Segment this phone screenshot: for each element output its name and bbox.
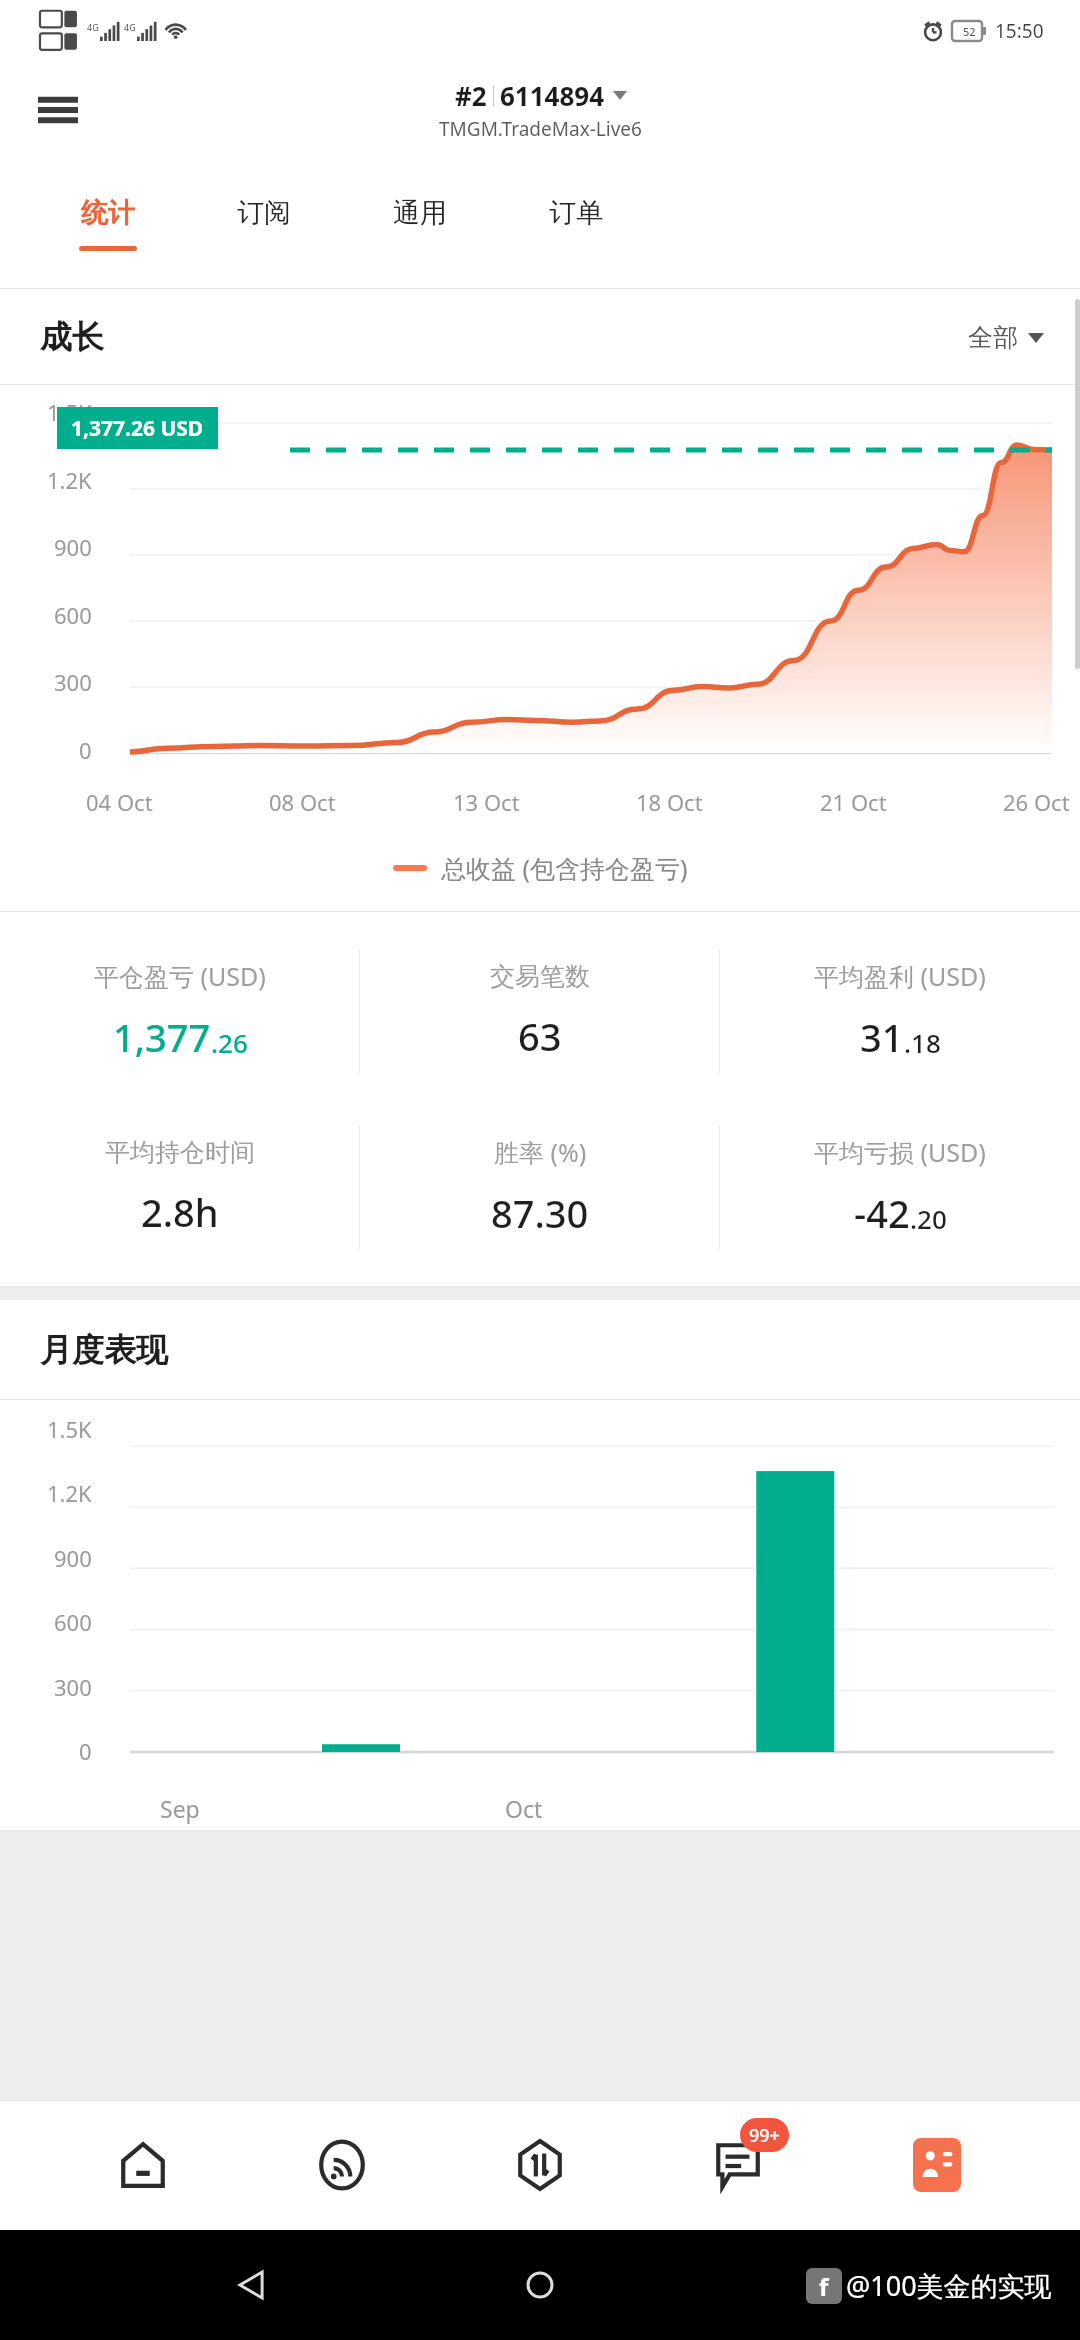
button[interactable]: Messages (683, 2110, 793, 2220)
staticText: 4G (124, 21, 136, 33)
staticText: Oct (505, 1793, 543, 1824)
staticText: 26 Oct (1003, 787, 1070, 817)
staticText: 52 (963, 24, 976, 39)
staticText: #2 (455, 78, 487, 113)
staticText: .26 (211, 1025, 248, 1060)
button[interactable]: Home (88, 2110, 198, 2220)
staticText: 18 Oct (636, 787, 703, 817)
button[interactable]: Menu (26, 78, 90, 142)
staticText: 总收益 (包含持仓盈亏) (441, 851, 688, 885)
staticText: 平仓盈亏 (USD) (94, 959, 266, 993)
staticText: 月度表现 (40, 1330, 168, 1370)
staticText: 600 (54, 1607, 92, 1637)
staticText: 0 (79, 1736, 92, 1766)
staticText: 600 (54, 600, 92, 630)
button[interactable]: 订单 (498, 157, 654, 289)
staticText: 1.5K (47, 1414, 92, 1444)
staticText: 31 (860, 1011, 904, 1063)
staticText: 订单 (549, 196, 603, 230)
staticText: -42 (854, 1187, 910, 1239)
staticText: .18 (904, 1025, 941, 1060)
staticText: 63 (518, 1010, 562, 1062)
staticText: 1,377 (113, 1011, 211, 1063)
staticText: 4G (87, 21, 99, 33)
staticText: TMGM.TradeMax-Live6 (439, 116, 642, 142)
button[interactable]: 统计 (30, 157, 186, 289)
staticText: 统计 (81, 196, 135, 230)
staticText: 成长 (40, 317, 104, 357)
button[interactable]: 通用 (342, 157, 498, 289)
button[interactable]: Signals (287, 2110, 397, 2220)
staticText: 99+ (749, 2123, 780, 2148)
staticText: 1.2K (47, 465, 92, 495)
staticText: .20 (910, 1201, 947, 1236)
staticText: 1.5K (47, 397, 92, 427)
staticText: 04 Oct (86, 787, 153, 817)
staticText: 平均亏损 (USD) (814, 1135, 986, 1169)
staticText: 900 (54, 532, 92, 562)
staticText: Sep (160, 1793, 200, 1824)
staticText: 87.30 (491, 1187, 589, 1239)
staticText: 0 (79, 735, 92, 765)
staticText: 通用 (393, 196, 447, 230)
button[interactable]: Back (218, 2250, 288, 2320)
staticText: 900 (54, 1543, 92, 1573)
staticText: 平均持仓时间 (105, 1137, 255, 1168)
staticText: 2.8h (141, 1186, 219, 1238)
button[interactable]: Profile (882, 2110, 992, 2220)
staticText: 订阅 (237, 196, 291, 230)
staticText: 300 (54, 667, 92, 697)
staticText: @100美金的实现 (846, 2267, 1052, 2304)
button[interactable]: 全部 (968, 322, 1044, 353)
staticText: 全部 (968, 322, 1018, 353)
staticText: 平均盈利 (USD) (814, 959, 986, 993)
staticText: 21 Oct (820, 787, 887, 817)
staticText: f (819, 2270, 829, 2303)
staticText: 胜率 (%) (494, 1135, 587, 1169)
staticText: 15:50 (995, 18, 1044, 44)
button[interactable]: Trade (485, 2110, 595, 2220)
staticText: 300 (54, 1672, 92, 1702)
staticText: 6114894 (500, 78, 605, 113)
staticText: 08 Oct (269, 787, 336, 817)
button[interactable]: Home (505, 2250, 575, 2320)
staticText: 1.2K (47, 1478, 92, 1508)
staticText: 交易笔数 (490, 961, 590, 992)
staticText: 1,377.26 USD (71, 414, 204, 443)
staticText: 13 Oct (453, 787, 520, 817)
button[interactable]: 订阅 (186, 157, 342, 289)
